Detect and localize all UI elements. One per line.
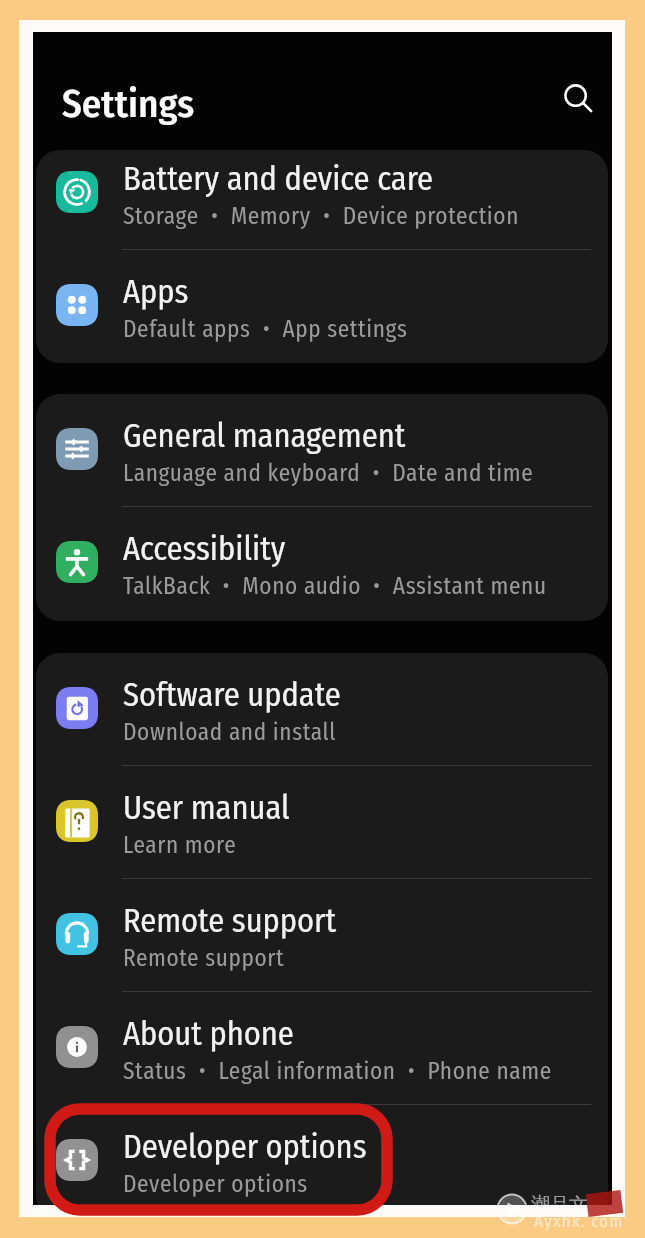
button[interactable]: Software update xyxy=(36,653,608,766)
staticText: Remote support xyxy=(123,902,337,941)
staticText: Software update xyxy=(123,676,341,715)
staticText: Developer options xyxy=(123,1170,308,1198)
staticText: Storage • Memory • Device protection xyxy=(123,202,519,230)
staticText: Battery and device care xyxy=(123,160,434,199)
staticText: Accessibility xyxy=(123,530,286,569)
staticText: Learn more xyxy=(123,831,237,859)
staticText: User manual xyxy=(123,789,290,828)
staticText: TalkBack • Mono audio • Assistant menu xyxy=(123,572,547,600)
staticText: Apps xyxy=(123,273,189,312)
staticText: Ayxhk. com xyxy=(534,1211,624,1231)
staticText: Settings xyxy=(62,81,195,128)
button[interactable]: General management xyxy=(36,394,608,507)
staticText: 潮品文 xyxy=(531,1193,588,1217)
button[interactable]: Battery and device care xyxy=(36,150,608,250)
button[interactable]: User manual xyxy=(36,766,608,879)
staticText: Default apps • App settings xyxy=(123,315,408,343)
button[interactable]: Search xyxy=(545,65,605,125)
button[interactable]: Apps xyxy=(36,250,608,350)
button[interactable]: Developer options xyxy=(36,1105,608,1205)
button[interactable]: Remote support xyxy=(36,879,608,992)
staticText: Developer options xyxy=(123,1128,367,1167)
staticText: About phone xyxy=(123,1015,294,1054)
staticText: Remote support xyxy=(123,944,285,972)
staticText: Download and install xyxy=(123,718,336,746)
staticText: Language and keyboard • Date and time xyxy=(123,459,534,487)
staticText: General management xyxy=(123,417,406,456)
staticText: Status • Legal information • Phone name xyxy=(123,1057,552,1085)
button[interactable]: Accessibility xyxy=(36,507,608,620)
button[interactable]: About phone xyxy=(36,992,608,1105)
